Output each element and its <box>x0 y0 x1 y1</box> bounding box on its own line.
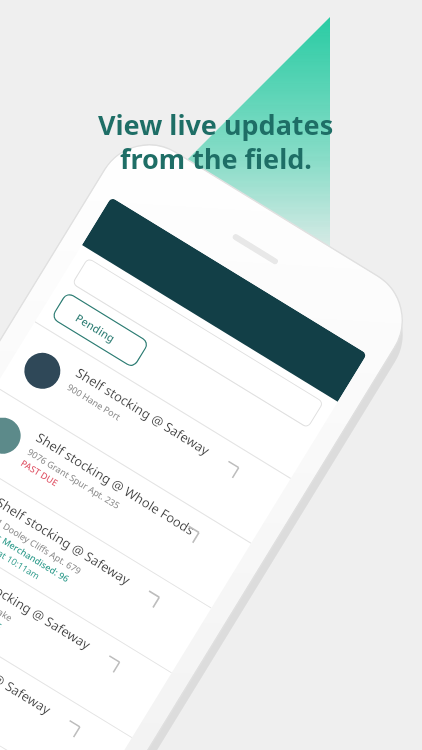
button[interactable]: View live updates from the field <box>0 0 422 750</box>
